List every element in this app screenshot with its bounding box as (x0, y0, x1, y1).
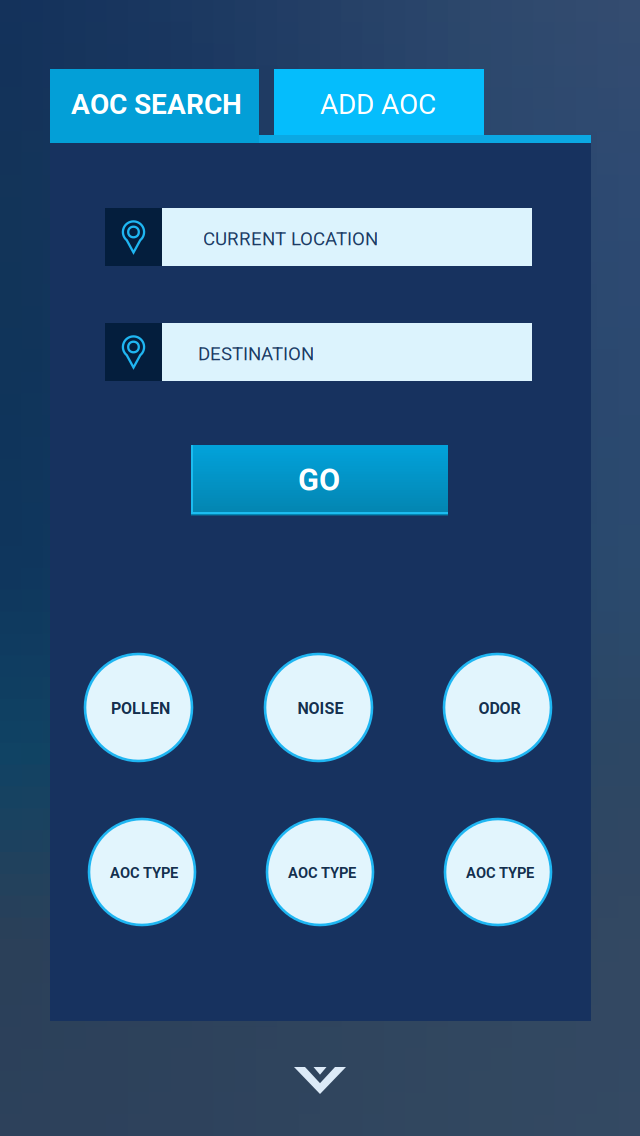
staticText: CURRENT LOCATION (203, 228, 378, 250)
button[interactable]: NOISE (265, 654, 372, 761)
staticText: ADD AOC (320, 88, 436, 121)
staticText: DESTINATION (198, 343, 314, 365)
button[interactable]: AOC TYPE (445, 819, 551, 925)
staticText: AOC TYPE (466, 864, 534, 882)
button[interactable]: ADD AOC (274, 69, 484, 135)
staticText: POLLEN (111, 699, 170, 718)
staticText: AOC TYPE (110, 864, 178, 882)
button[interactable]: ODOR (444, 654, 551, 761)
staticText: NOISE (297, 699, 343, 718)
button[interactable]: CURRENT LOCATION (105, 208, 532, 266)
button[interactable]: AOC TYPE (89, 819, 195, 925)
button[interactable]: AOC TYPE (267, 819, 373, 925)
button[interactable]: GO (191, 445, 448, 514)
staticText: GO (298, 462, 340, 498)
staticText: AOC SEARCH (71, 88, 242, 121)
staticText: AOC TYPE (288, 864, 356, 882)
button[interactable]: AOC SEARCH (50, 69, 259, 143)
button[interactable]: DESTINATION (105, 323, 532, 381)
staticText: ODOR (478, 699, 520, 718)
button[interactable]: POLLEN (85, 654, 192, 761)
